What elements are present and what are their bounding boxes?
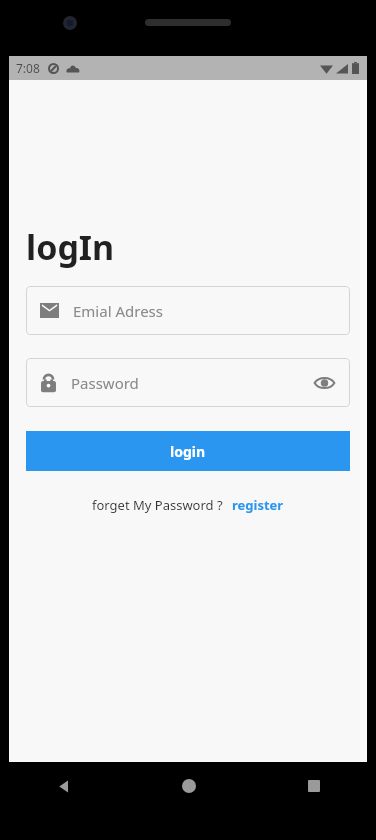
button[interactable]: Back	[0, 762, 126, 810]
staticText: 7:08	[16, 60, 40, 76]
button[interactable]: Recent apps	[251, 762, 376, 810]
button[interactable]: login	[26, 431, 350, 471]
button[interactable]: register	[232, 496, 284, 514]
button[interactable]: Show password	[312, 371, 336, 395]
staticText: login	[170, 442, 206, 461]
staticText: Emial Adress	[73, 301, 163, 321]
button[interactable]: Emial Adress	[26, 286, 350, 335]
staticText: Password	[71, 373, 139, 393]
button[interactable]: Home	[126, 762, 251, 810]
staticText: logIn	[26, 224, 115, 270]
button[interactable]: forget My Password ?	[92, 496, 223, 514]
button[interactable]: Password	[26, 358, 350, 407]
staticText: register	[232, 496, 284, 514]
staticText: forget My Password ?	[92, 496, 223, 514]
